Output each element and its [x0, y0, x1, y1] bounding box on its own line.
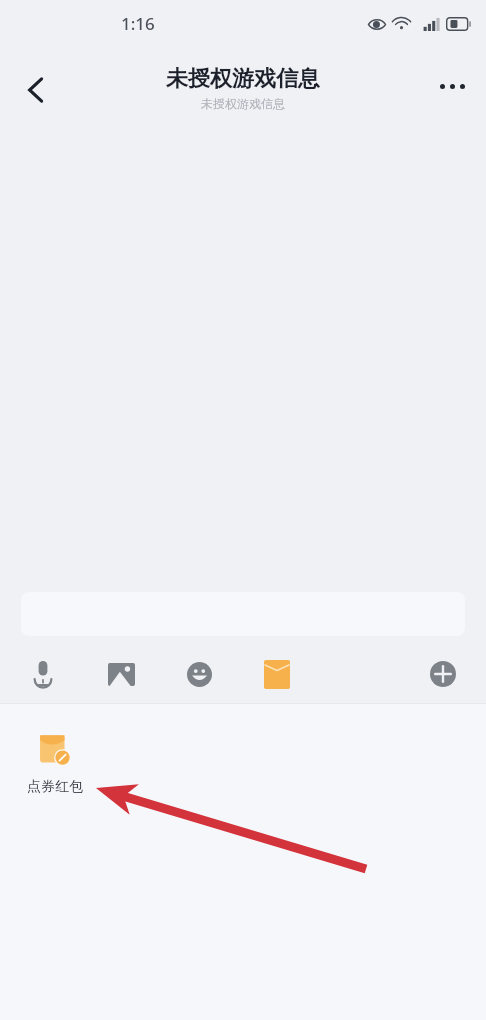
button[interactable]: More: [422, 653, 464, 695]
button[interactable]: Voice message: [22, 653, 64, 695]
button[interactable]: Emoji: [178, 653, 220, 695]
button[interactable]: Red packet: [256, 653, 298, 695]
staticText: 未授权游戏信息: [166, 65, 320, 93]
staticText: 1:16: [121, 12, 155, 35]
staticText: 点券红包: [27, 778, 83, 796]
staticText: 未授权游戏信息: [201, 96, 285, 111]
button[interactable]: Back: [10, 64, 62, 116]
button[interactable]: Photos: [100, 653, 142, 695]
button[interactable]: 点券红包: [22, 734, 88, 796]
button[interactable]: More options: [426, 60, 478, 112]
